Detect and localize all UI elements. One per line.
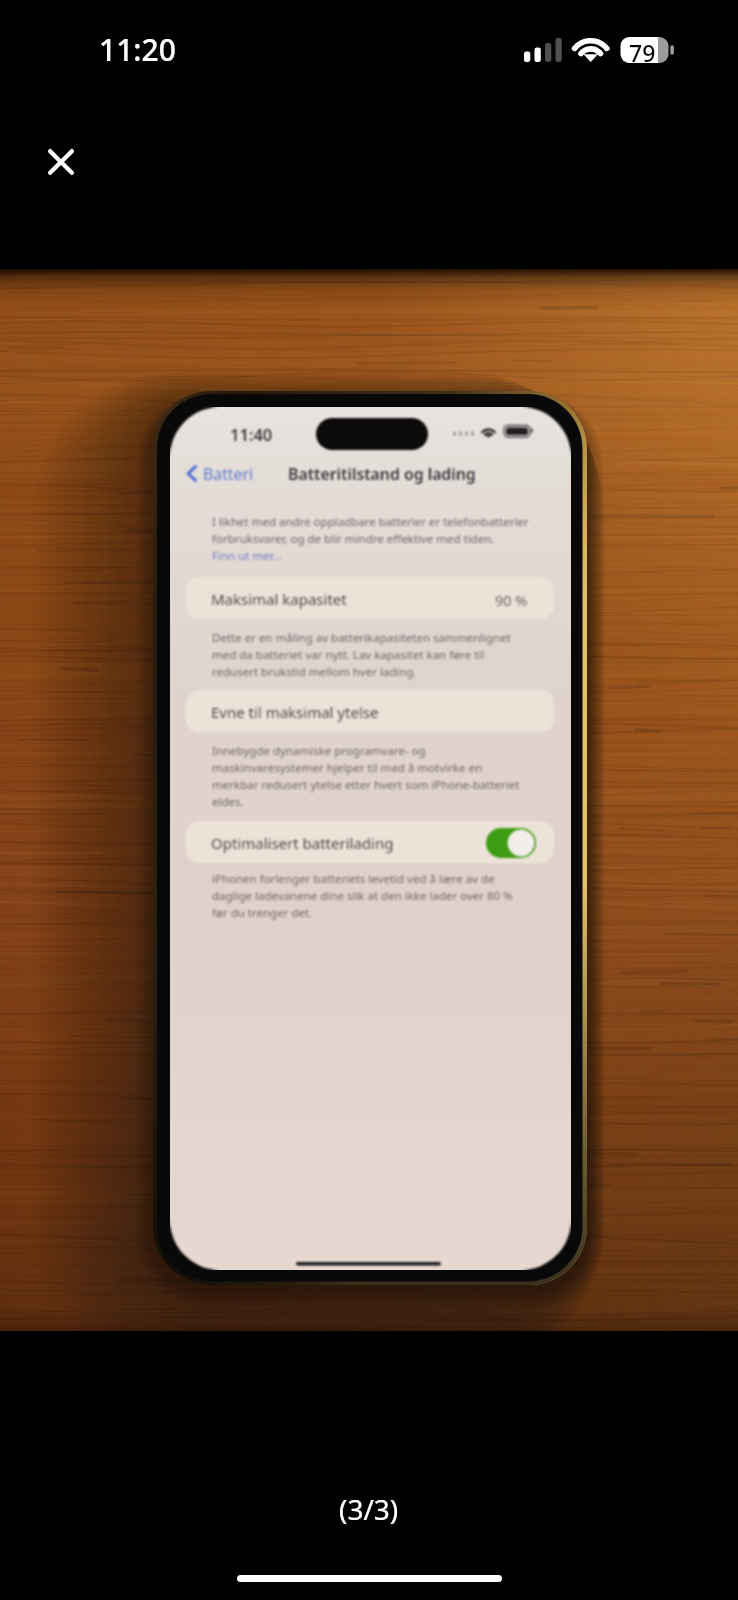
staticText: 11:40 — [230, 423, 273, 445]
staticText: daglige ladevanene dine slik at den ikke… — [212, 888, 513, 904]
staticText: maskinvaresystemer hjelper til med å mot… — [212, 760, 482, 776]
staticText: Innebygde dynamiske programvare- og — [212, 743, 426, 759]
staticText: Evne til maksimal ytelse — [211, 702, 379, 722]
staticText: Optimalisert batterilading — [211, 833, 394, 853]
staticText: I likhet med andre oppladbare batterier … — [212, 514, 529, 530]
staticText: med da batteriet var nytt. Lav kapasitet… — [212, 647, 485, 663]
staticText: Dette er en måling av batterikapasiteten… — [212, 630, 511, 646]
staticText: (3/3) — [339, 1490, 399, 1528]
staticText: Batteri — [203, 463, 254, 485]
staticText: Batteritilstand og lading — [288, 463, 476, 485]
staticText: før du trenger det. — [212, 905, 313, 921]
staticText: 90 % — [495, 590, 528, 610]
staticText: forbruksvarer, og de blir mindre effekti… — [212, 531, 495, 547]
staticText: 79 — [629, 37, 656, 68]
button[interactable]: Close — [28, 129, 94, 195]
staticText: merkbar redusert ytelse etter hvert som … — [212, 777, 520, 793]
staticText: Finn ut mer... — [212, 548, 282, 564]
staticText: iPhonen forlenger batteriets levetid ved… — [212, 871, 495, 887]
staticText: 11:20 — [99, 29, 176, 70]
staticText: Maksimal kapasitet — [211, 589, 347, 609]
staticText: eldes. — [212, 794, 244, 810]
staticText: redusert brukstid mellom hver lading. — [212, 664, 417, 680]
